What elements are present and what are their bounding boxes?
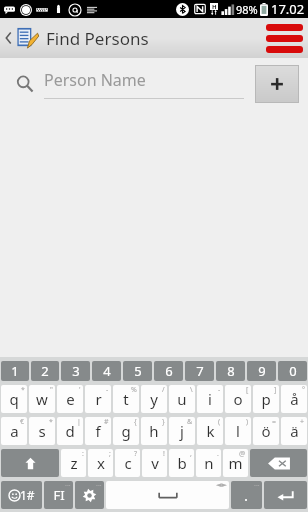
- button[interactable]: Navigate up, Find Persons: [0, 22, 157, 54]
- staticText: Find Persons: [46, 27, 149, 50]
- button[interactable]: *: [29, 417, 55, 445]
- button[interactable]: ,: [169, 449, 194, 477]
- button[interactable]: 8: [216, 361, 245, 381]
- staticText: 7: [196, 362, 204, 380]
- staticText: ···: [254, 481, 260, 491]
- staticText: FI: [53, 486, 65, 504]
- staticText: u: [177, 389, 187, 409]
- button[interactable]: ): [225, 417, 251, 445]
- staticText: \: [190, 385, 193, 395]
- button[interactable]: (: [197, 417, 223, 445]
- staticText: °: [302, 385, 305, 395]
- staticText: 98%: [236, 2, 258, 17]
- button[interactable]: ···: [44, 481, 73, 509]
- button[interactable]: Enter: [264, 481, 307, 509]
- button[interactable]: }: [141, 417, 167, 445]
- button[interactable]: !: [142, 449, 167, 477]
- staticText: ···: [65, 481, 71, 491]
- staticText: 8: [227, 362, 235, 380]
- staticText: ": [50, 385, 53, 395]
- staticText: @: [239, 449, 246, 459]
- staticText: H: [212, 3, 217, 10]
- button[interactable]: Add person: [255, 65, 299, 103]
- button[interactable]: 5: [123, 361, 152, 381]
- staticText: 3: [72, 362, 80, 380]
- staticText: -: [106, 385, 109, 395]
- button[interactable]: ?: [115, 449, 140, 477]
- staticText: 9: [258, 362, 266, 380]
- staticText: 17.02: [271, 0, 305, 18]
- staticText: z: [70, 453, 78, 473]
- staticText: {: [134, 417, 137, 427]
- button[interactable]: Settings: [75, 481, 104, 509]
- button[interactable]: [: [225, 385, 251, 413]
- staticText: w: [36, 389, 48, 409]
- button[interactable]: /: [141, 385, 167, 413]
- staticText: 1#: [20, 487, 35, 503]
- staticText: -: [218, 385, 221, 395]
- button[interactable]: #: [85, 417, 111, 445]
- staticText: x: [97, 453, 105, 473]
- staticText: m: [228, 453, 243, 473]
- button[interactable]: |: [57, 417, 83, 445]
- staticText: g: [121, 421, 131, 441]
- button[interactable]: &: [169, 417, 195, 445]
- button[interactable]: Person Name: [44, 69, 244, 99]
- staticText: l: [236, 421, 240, 441]
- staticText: ä: [290, 421, 299, 441]
- button[interactable]: \: [169, 385, 195, 413]
- staticText: ;: [109, 449, 111, 459]
- staticText: #: [104, 417, 109, 427]
- staticText: 0: [289, 362, 297, 380]
- staticText: k: [206, 421, 215, 441]
- staticText: s: [38, 421, 46, 441]
- button[interactable]: Search: [16, 75, 34, 93]
- button[interactable]: *: [1, 385, 27, 413]
- button[interactable]: ]: [253, 385, 279, 413]
- button[interactable]: {: [113, 417, 139, 445]
- button[interactable]: 4: [92, 361, 121, 381]
- button[interactable]: %: [113, 385, 139, 413]
- staticText: n: [204, 453, 214, 473]
- button[interactable]: ": [29, 385, 55, 413]
- button[interactable]: Space: [106, 481, 229, 509]
- button[interactable]: -: [85, 385, 111, 413]
- button[interactable]: Backspace: [250, 449, 307, 477]
- button[interactable]: 9: [247, 361, 276, 381]
- staticText: 1: [11, 362, 19, 380]
- staticText: .: [244, 485, 249, 505]
- staticText: ,: [190, 449, 192, 459]
- staticText: .: [217, 449, 219, 459]
- button[interactable]: 0: [278, 361, 307, 381]
- button[interactable]: ': [57, 385, 83, 413]
- button[interactable]: 3: [61, 361, 90, 381]
- button[interactable]: +: [281, 417, 307, 445]
- staticText: 5: [134, 362, 142, 380]
- staticText: r: [95, 389, 102, 409]
- button[interactable]: .: [196, 449, 221, 477]
- staticText: j: [180, 421, 184, 441]
- staticText: *: [21, 385, 25, 395]
- staticText: d: [65, 421, 75, 441]
- button[interactable]: °: [281, 385, 307, 413]
- button[interactable]: Menu: [260, 18, 308, 58]
- staticText: e: [66, 389, 75, 409]
- button[interactable]: 2: [31, 361, 59, 381]
- staticText: 2: [41, 362, 49, 380]
- button[interactable]: ;: [88, 449, 113, 477]
- button[interactable]: €: [1, 417, 27, 445]
- button[interactable]: Period: [231, 481, 262, 509]
- staticText: *: [49, 417, 53, 427]
- button[interactable]: 1: [1, 361, 29, 381]
- staticText: c: [124, 453, 132, 473]
- button[interactable]: =: [253, 417, 279, 445]
- button[interactable]: -: [197, 385, 223, 413]
- button[interactable]: Shift: [1, 449, 59, 477]
- button[interactable]: :: [61, 449, 86, 477]
- staticText: /: [162, 385, 165, 395]
- button[interactable]: 6: [154, 361, 183, 381]
- button[interactable]: @: [223, 449, 248, 477]
- button[interactable]: Symbols: [1, 481, 42, 509]
- button[interactable]: 7: [185, 361, 214, 381]
- staticText: i: [208, 389, 212, 409]
